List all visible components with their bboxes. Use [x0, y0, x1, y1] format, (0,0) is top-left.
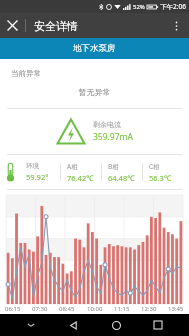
button[interactable]: Hide [20, 314, 42, 336]
button[interactable]: 地下水泵房 [0, 38, 189, 59]
staticText: 10:00 [87, 305, 103, 313]
staticText: C相 [149, 162, 160, 171]
button[interactable]: Back [62, 314, 84, 336]
staticText: 暂无异常 [0, 87, 189, 97]
staticText: 52% [133, 3, 145, 11]
staticText: A相 [67, 162, 78, 171]
button[interactable]: Current chart [4, 193, 185, 305]
staticText: 08:45 [59, 305, 75, 313]
staticText: 07:30 [32, 305, 48, 313]
staticText: 64.48℃ [108, 173, 135, 183]
staticText: 安全详情 [34, 19, 78, 33]
staticText: 59.92° [26, 172, 49, 182]
button[interactable]: C相 [143, 162, 183, 183]
staticText: 下午2:06 [160, 2, 186, 11]
button[interactable]: 剩余电流 [0, 109, 189, 154]
button[interactable]: A相 [61, 162, 101, 183]
button[interactable]: Close [0, 13, 25, 38]
button[interactable]: Recents [147, 314, 169, 336]
staticText: 地下水泵房 [73, 43, 116, 54]
other: Temperature [6, 162, 15, 182]
staticText: 359.97mA [93, 131, 133, 143]
staticText: B相 [108, 162, 119, 171]
staticText: 13:45 [168, 305, 184, 313]
staticText: 56.3℃ [149, 173, 172, 183]
staticText: 12:30 [141, 305, 157, 313]
staticText: 06:15 [5, 305, 21, 313]
staticText: 当前异常 [11, 69, 41, 78]
button[interactable]: B相 [102, 162, 142, 183]
staticText: 环境 [26, 162, 39, 170]
staticText: 76.42℃ [67, 173, 94, 183]
staticText: 11:15 [114, 305, 130, 313]
staticText: 剩余电流 [93, 120, 121, 129]
button[interactable]: 环境 [20, 162, 60, 182]
button[interactable]: Home [105, 314, 127, 336]
button[interactable]: More options [164, 13, 189, 38]
